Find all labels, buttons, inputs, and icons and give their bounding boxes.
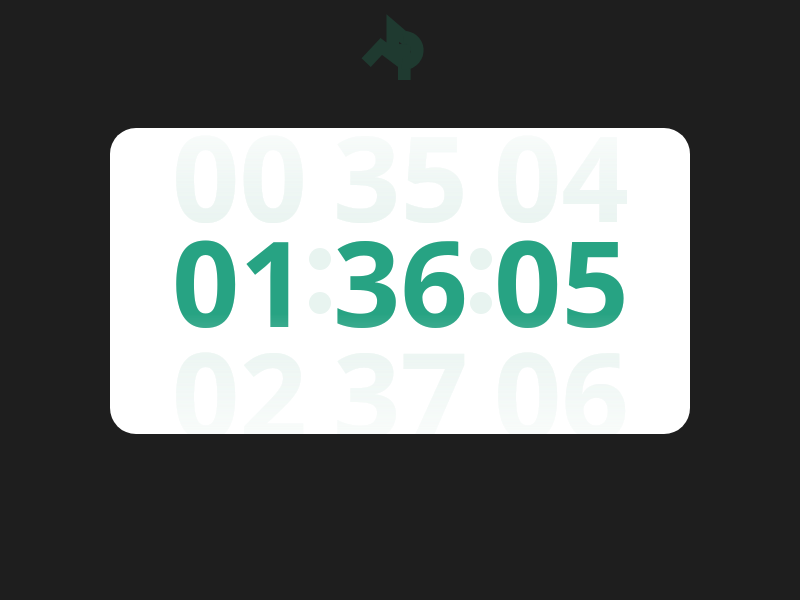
staticText: 35: [333, 128, 468, 257]
button[interactable]: 04: [494, 128, 629, 434]
staticText: 01: [172, 201, 307, 362]
button[interactable]: 35: [333, 128, 468, 434]
staticText: 36: [333, 201, 468, 362]
staticText: 04: [494, 128, 629, 257]
staticText: 05: [494, 201, 629, 362]
staticText: 06: [494, 313, 629, 434]
staticText: 37: [333, 313, 468, 434]
other: MP logo: [364, 18, 436, 80]
button[interactable]: 00: [172, 128, 307, 434]
staticText: 00: [172, 128, 307, 257]
staticText: 02: [172, 313, 307, 434]
button[interactable]: 00: [110, 128, 690, 434]
